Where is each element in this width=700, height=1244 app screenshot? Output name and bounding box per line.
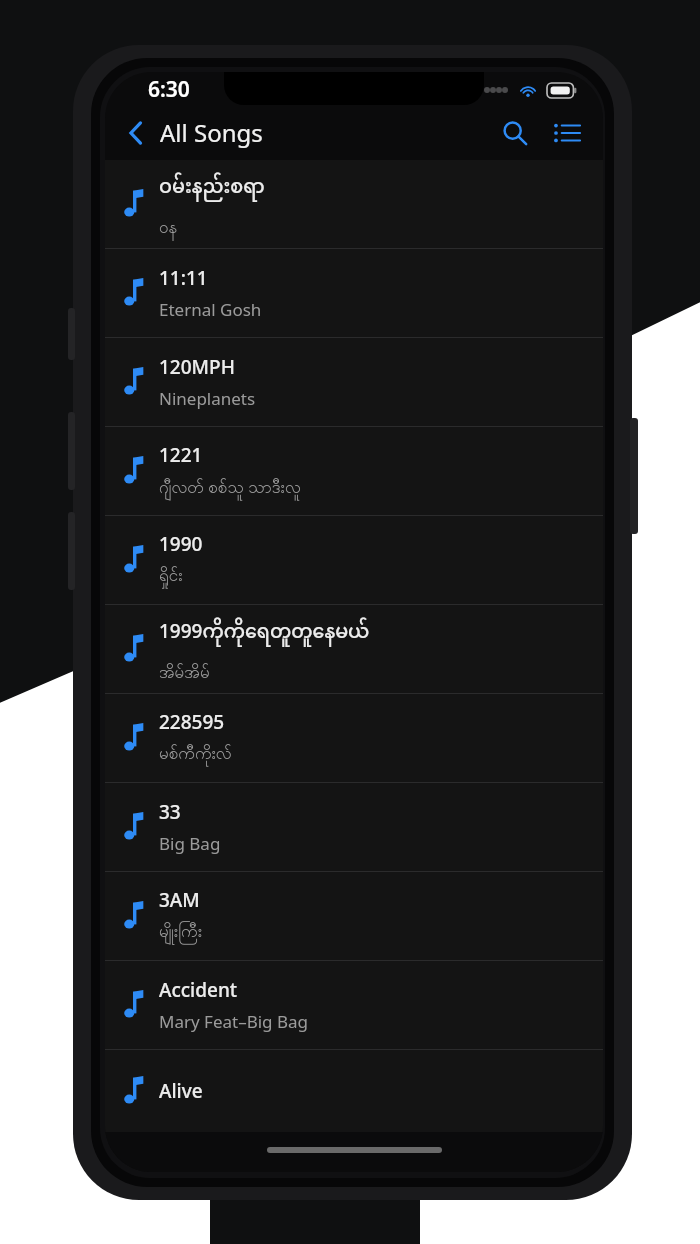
staticText: 3AM — [159, 887, 200, 913]
staticText: ဂျီလတ် စစ်သူ သာဒီးလူ — [159, 475, 301, 501]
staticText: Alive — [159, 1078, 203, 1104]
button[interactable]: 11:11 — [105, 249, 603, 337]
button[interactable]: 1999ကိုကိုရေတူတူနေမယ် — [105, 605, 603, 693]
staticText: ရှိုင်း — [159, 564, 183, 589]
staticText: အိမ်အိမ် — [159, 661, 210, 686]
staticText: 6:30 — [148, 75, 190, 104]
staticText: Nineplanets — [159, 387, 256, 410]
staticText: 1999ကိုကိုရေတူတူနေမယ် — [159, 613, 370, 654]
staticText: Accident — [159, 977, 238, 1003]
staticText: ဝမ်းနည်းစရာ — [159, 168, 265, 209]
staticText: 1221 — [159, 442, 203, 468]
button[interactable]: ဝမ်းနည်းစရာ — [105, 160, 603, 248]
staticText: မျိုးကြီး — [159, 920, 202, 945]
staticText: 1990 — [159, 531, 203, 557]
button[interactable]: View options — [544, 110, 590, 156]
button[interactable]: 3AM — [105, 872, 603, 960]
staticText: 11:11 — [159, 265, 208, 291]
button[interactable]: 228595 — [105, 694, 603, 782]
button[interactable]: 1221 — [105, 427, 603, 515]
button[interactable]: Search — [492, 110, 538, 156]
staticText: Eternal Gosh — [159, 298, 262, 321]
staticText: Big Bag — [159, 832, 221, 855]
staticText: 120MPH — [159, 354, 235, 380]
staticText: Mary Feat–Big Bag — [159, 1010, 309, 1033]
button[interactable]: Accident — [105, 961, 603, 1049]
staticText: All Songs — [160, 116, 263, 149]
staticText: ဝန — [159, 216, 178, 241]
staticText: 33 — [159, 799, 181, 825]
button[interactable]: Alive — [105, 1050, 603, 1132]
staticText: မစ်ကီကိုးလ် — [159, 742, 232, 767]
button[interactable]: 120MPH — [105, 338, 603, 426]
staticText: 228595 — [159, 709, 225, 735]
button[interactable]: 1990 — [105, 516, 603, 604]
button[interactable]: 33 — [105, 783, 603, 871]
button[interactable]: Back — [118, 111, 154, 155]
